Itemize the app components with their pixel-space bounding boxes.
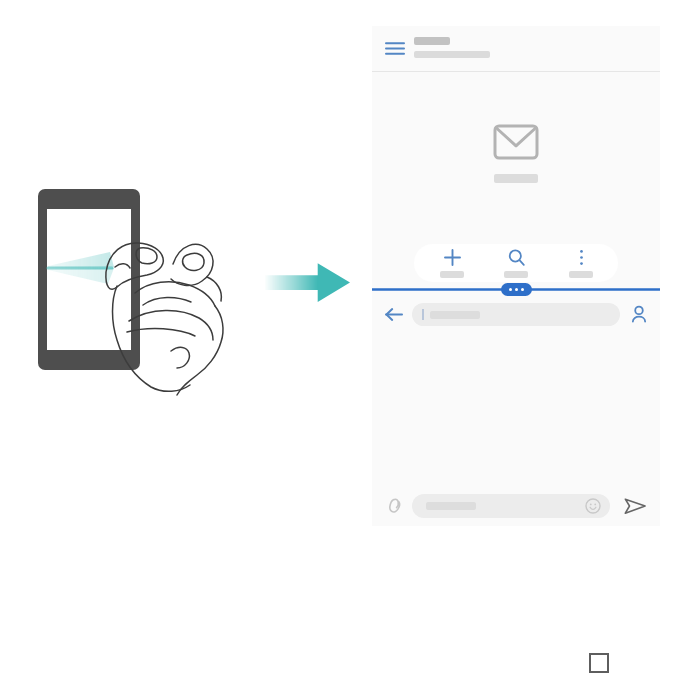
button[interactable]: Search — [489, 245, 543, 282]
button[interactable]: More options — [554, 245, 608, 282]
button[interactable]: Send — [624, 496, 646, 516]
button[interactable]: Back — [385, 307, 403, 322]
button[interactable]: Stop — [589, 653, 609, 673]
button[interactable] — [412, 494, 610, 518]
button[interactable]: Contacts — [630, 305, 648, 323]
button[interactable]: Menu — [386, 41, 404, 56]
button[interactable]: Add — [425, 245, 479, 282]
button[interactable] — [412, 303, 620, 326]
button[interactable]: Attach — [386, 497, 402, 515]
button[interactable]: More — [501, 283, 532, 296]
